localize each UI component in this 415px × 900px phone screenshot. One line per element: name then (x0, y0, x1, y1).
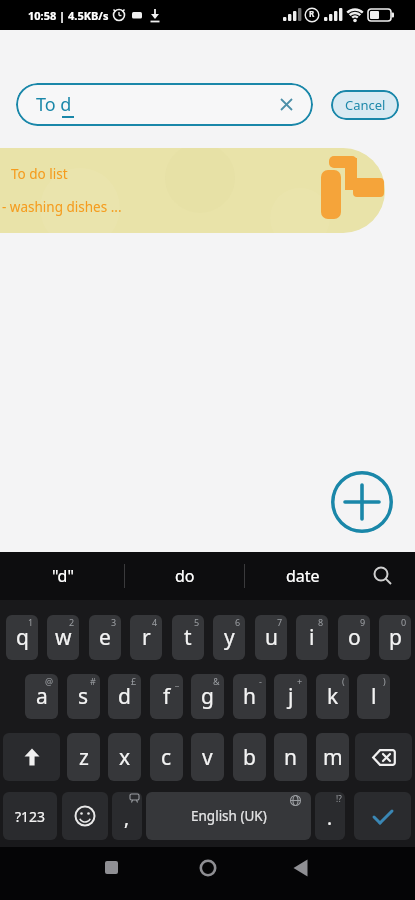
button[interactable]: do (125, 552, 245, 600)
button[interactable]: q (6, 615, 38, 660)
staticText: ) (383, 675, 386, 687)
staticText: v (202, 743, 213, 772)
button[interactable]: h (233, 674, 266, 719)
button[interactable]: s (67, 674, 100, 719)
staticText: g (201, 682, 214, 711)
staticText: u (265, 623, 278, 652)
staticText: To d (36, 92, 72, 117)
button[interactable]: l (357, 674, 390, 719)
button[interactable] (199, 859, 217, 877)
staticText: 4 (152, 616, 158, 628)
staticText: To do list (11, 165, 68, 183)
button[interactable]: ?123 (3, 792, 57, 840)
button[interactable]: x (108, 733, 141, 781)
button[interactable]: English (UK) (146, 792, 311, 840)
staticText: @ (45, 675, 54, 687)
staticText: i (309, 623, 315, 652)
button[interactable]: date (245, 552, 360, 600)
staticText: 2 (69, 616, 75, 628)
staticText: 10:58 | 4.5KB/s (28, 8, 109, 23)
button[interactable]: i (296, 615, 328, 660)
staticText: 8 (318, 616, 324, 628)
staticText: a (36, 682, 48, 711)
staticText: R (309, 8, 315, 19)
button[interactable]: w (47, 615, 79, 660)
button[interactable]: k (316, 674, 349, 719)
staticText: m (323, 743, 343, 772)
staticText: h (243, 682, 256, 711)
staticText: e (99, 623, 111, 652)
staticText: x (119, 743, 131, 772)
button[interactable]: To d (16, 83, 313, 126)
staticText: do (175, 565, 195, 587)
button[interactable]: j (274, 674, 307, 719)
staticText: date (286, 565, 320, 587)
staticText: & (213, 675, 220, 687)
staticText: English (UK) (191, 807, 267, 825)
staticText: 6 (235, 616, 241, 628)
staticText: w (55, 623, 72, 652)
staticText: 5 (194, 616, 200, 628)
staticText: !? (336, 793, 342, 804)
staticText: t (184, 623, 192, 652)
button[interactable] (62, 792, 108, 840)
staticText: c (161, 743, 172, 772)
button[interactable]: n (274, 733, 307, 781)
button[interactable]: Cancel (331, 90, 399, 120)
button[interactable]: p (379, 615, 411, 660)
button[interactable] (354, 792, 411, 840)
staticText: n (284, 743, 297, 772)
button[interactable]: g (191, 674, 224, 719)
staticText: d (118, 682, 131, 711)
staticText: k (327, 682, 339, 711)
button[interactable]: e (89, 615, 121, 660)
button[interactable]: v (191, 733, 224, 781)
button[interactable]: f (150, 674, 183, 719)
button[interactable]: t (172, 615, 204, 660)
button[interactable]: , (112, 792, 142, 840)
button[interactable] (355, 733, 412, 781)
staticText: # (90, 675, 96, 687)
staticText: s (78, 682, 89, 711)
staticText: - washing dishes ... (2, 198, 122, 216)
staticText: 7 (277, 616, 283, 628)
staticText: ?123 (15, 807, 46, 826)
staticText: o (348, 623, 361, 652)
staticText: £ (131, 675, 137, 687)
staticText: "d" (52, 565, 74, 587)
button[interactable]: "d" (0, 552, 125, 600)
staticText: 1 (28, 616, 34, 628)
staticText: y (224, 623, 235, 652)
button[interactable]: o (338, 615, 370, 660)
button[interactable]: y (213, 615, 245, 660)
staticText: _ (175, 675, 179, 687)
button[interactable]: To do list (0, 148, 385, 233)
button[interactable] (331, 471, 393, 533)
staticText: 3 (111, 616, 117, 628)
staticText: 9 (360, 616, 366, 628)
staticText: q (16, 623, 29, 652)
button[interactable]: c (150, 733, 183, 781)
button[interactable] (292, 859, 310, 877)
button[interactable]: . (315, 792, 345, 840)
staticText: Cancel (345, 96, 386, 114)
staticText: l (371, 682, 377, 711)
staticText: p (389, 623, 402, 652)
button[interactable]: b (233, 733, 266, 781)
button[interactable] (3, 733, 60, 781)
button[interactable]: u (255, 615, 287, 660)
staticText: f (163, 682, 171, 711)
button[interactable] (105, 861, 118, 874)
button[interactable]: m (316, 733, 349, 781)
button[interactable]: r (130, 615, 162, 660)
staticText: , (124, 805, 130, 831)
staticText: . (327, 805, 333, 831)
staticText: 0 (401, 616, 407, 628)
button[interactable] (364, 552, 415, 600)
staticText: + (297, 675, 303, 687)
staticText: ( (342, 675, 345, 687)
button[interactable]: d (108, 674, 141, 719)
staticText: z (79, 743, 89, 772)
button[interactable]: z (67, 733, 100, 781)
button[interactable]: a (25, 674, 58, 719)
